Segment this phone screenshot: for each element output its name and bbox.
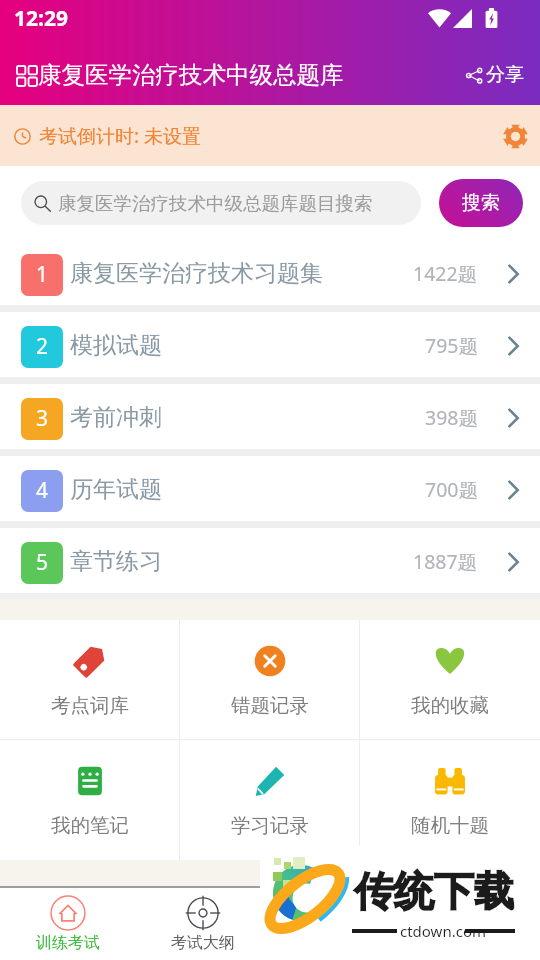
staticText: 搜索 — [462, 191, 500, 215]
button[interactable]: 搜索 — [439, 179, 523, 227]
button[interactable]: 2 — [0, 312, 540, 377]
staticText: 12:29 — [14, 4, 68, 33]
staticText: 1422题 — [413, 260, 478, 287]
button[interactable]: 分享 — [460, 57, 530, 93]
button[interactable]: 考试大纲 — [135, 888, 270, 960]
button[interactable]: 5 — [0, 528, 540, 593]
staticText: 章节练习 — [70, 547, 162, 576]
button[interactable]: 训练考试 — [0, 888, 135, 960]
staticText: ctdown.com — [400, 921, 486, 941]
staticText: 1 — [36, 260, 49, 289]
staticText: 训练考试 — [36, 933, 100, 953]
staticText: 随机十题 — [411, 813, 489, 838]
staticText: 考试大纲 — [171, 933, 235, 953]
button[interactable]: 1 — [0, 240, 540, 305]
staticText: 考试倒计时: 未设置 — [39, 123, 202, 149]
button[interactable]: 错题记录 — [180, 620, 360, 739]
button[interactable]: 康复医学治疗技术中级总题库题目搜索 — [21, 181, 421, 225]
staticText: 3 — [36, 404, 49, 433]
staticText: 我的笔记 — [51, 813, 129, 838]
staticText: 康复医学治疗技术中级总题库题目搜索 — [58, 192, 373, 215]
staticText: 398题 — [425, 404, 478, 431]
staticText: 模拟试题 — [70, 331, 162, 360]
staticText: 4 — [36, 476, 49, 505]
button[interactable]: 学习记录 — [180, 740, 360, 860]
button[interactable]: 3 — [0, 384, 540, 449]
staticText: 5 — [36, 548, 49, 577]
staticText: 我的收藏 — [411, 693, 489, 718]
button[interactable]: 我的笔记 — [0, 740, 180, 860]
staticText: 学习记录 — [231, 813, 309, 838]
staticText: 分享 — [486, 63, 524, 87]
button[interactable]: 随机十题 — [360, 740, 540, 860]
staticText: 考前冲刺 — [70, 403, 162, 432]
staticText: 795题 — [425, 332, 478, 359]
staticText: 康复医学治疗技术习题集 — [70, 259, 323, 288]
button[interactable]: 4 — [0, 456, 540, 521]
staticText: 700题 — [425, 476, 478, 503]
button[interactable]: 考点词库 — [0, 620, 180, 739]
staticText: 康复医学治疗技术中级总题库 — [38, 60, 344, 90]
staticText: 历年试题 — [70, 475, 162, 504]
staticText: 错题记录 — [231, 693, 309, 718]
button[interactable]: 我的收藏 — [360, 620, 540, 739]
staticText: 考点词库 — [51, 693, 129, 718]
staticText: 传统下载 — [354, 866, 514, 916]
staticText: 2 — [36, 332, 49, 361]
staticText: 1887题 — [413, 548, 478, 575]
button[interactable]: Settings — [498, 118, 533, 153]
